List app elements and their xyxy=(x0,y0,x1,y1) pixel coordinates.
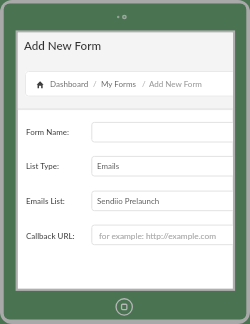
staticText: Add New Form xyxy=(24,39,102,53)
staticText: Add New Form xyxy=(149,79,202,89)
button[interactable]: Form Name: xyxy=(91,122,233,143)
staticText: List Type: xyxy=(26,161,60,171)
staticText: for example: http://example.com xyxy=(99,231,217,241)
button[interactable]: Dashboard xyxy=(50,79,89,89)
button[interactable]: Home xyxy=(117,299,134,316)
staticText: / xyxy=(93,79,97,89)
button[interactable]: Emails List: xyxy=(91,191,233,212)
staticText: Emails List: xyxy=(26,196,65,206)
button[interactable]: My Forms xyxy=(101,79,136,89)
staticText: Sendiio Prelaunch xyxy=(97,196,160,206)
staticText: Emails xyxy=(97,161,120,171)
staticText: Form Name: xyxy=(26,127,69,137)
button[interactable]: Dashboard home xyxy=(36,80,45,89)
staticText: Callback URL: xyxy=(26,231,75,241)
staticText: / xyxy=(142,79,146,89)
button[interactable]: Callback URL: xyxy=(91,225,233,246)
button[interactable]: List Type: xyxy=(91,156,233,177)
